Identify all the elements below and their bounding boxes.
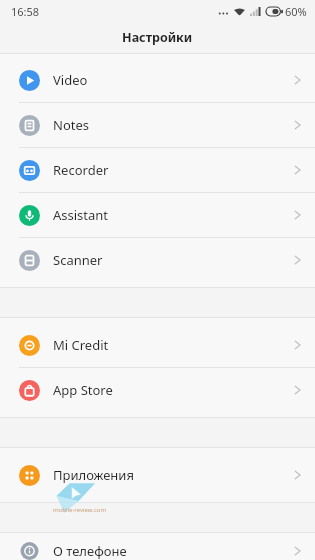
staticText: App Store — [53, 381, 294, 399]
staticText: 60% — [285, 4, 307, 19]
button[interactable]: О телефоне — [0, 542, 315, 560]
staticText: mobile-review.com — [53, 506, 107, 514]
button[interactable]: Video — [0, 62, 315, 98]
other: Open Приложения — [294, 469, 301, 481]
other: Open Assistant — [294, 209, 301, 221]
other: Open Video — [294, 74, 301, 86]
button[interactable]: Assistant — [0, 197, 315, 233]
other: Open Scanner — [294, 254, 301, 266]
staticText: Scanner — [53, 251, 294, 269]
staticText: Assistant — [53, 206, 294, 224]
staticText: Настройки — [122, 29, 193, 46]
button[interactable]: App Store — [0, 372, 315, 408]
other: Open Notes — [294, 119, 301, 131]
staticText: Приложения — [53, 466, 294, 484]
other: Open Recorder — [294, 164, 301, 176]
button[interactable]: Scanner — [0, 242, 315, 278]
staticText: Recorder — [53, 161, 294, 179]
button[interactable]: Notes — [0, 107, 315, 143]
staticText: Mi Credit — [53, 336, 294, 354]
button[interactable]: Приложения — [0, 457, 315, 493]
staticText: 16:58 — [11, 4, 40, 19]
staticText: О телефоне — [53, 542, 294, 560]
other: Open App Store — [294, 384, 301, 396]
other: Open Mi Credit — [294, 339, 301, 351]
button[interactable]: Recorder — [0, 152, 315, 188]
staticText: Video — [53, 71, 294, 89]
other: Open О телефоне — [294, 545, 301, 557]
button[interactable]: Mi Credit — [0, 327, 315, 363]
staticText: Notes — [53, 116, 294, 134]
